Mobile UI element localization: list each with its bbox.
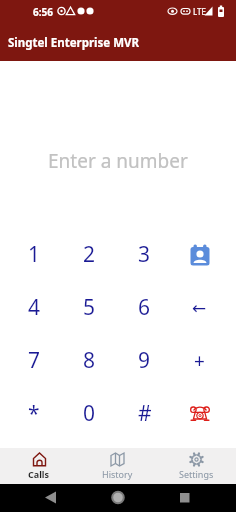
button[interactable]: Calls [0,448,78,484]
staticText: 6:56 [33,5,53,19]
staticText: Enter a number [48,148,188,174]
staticText: 8 [83,346,96,375]
button[interactable]: 2 [62,228,117,281]
staticText: History [102,468,133,480]
button[interactable]: 9 [117,334,172,387]
staticText: + [194,348,205,374]
staticText: LTE [193,6,206,17]
button[interactable]: 4 [6,281,62,334]
staticText: 4 [28,293,41,322]
button[interactable]: 7 [6,334,62,387]
button[interactable]: * [6,387,62,440]
button[interactable] [172,387,227,440]
staticText: 6 [138,293,151,322]
button[interactable]: + [172,334,227,387]
staticText: 7 [28,346,41,375]
staticText: 9 [138,346,151,375]
button[interactable]: ← [172,281,227,334]
button[interactable] [0,484,78,512]
staticText: * [28,399,40,428]
staticText: Calls [28,468,50,480]
button[interactable]: 1 [6,228,62,281]
staticText: # [138,399,152,428]
button[interactable] [172,228,227,281]
button[interactable]: History [78,448,157,484]
button[interactable]: # [117,387,172,440]
staticText: Singtel Enterprise MVR [8,35,140,51]
staticText: 0 [83,399,96,428]
button[interactable]: 8 [62,334,117,387]
staticText: 5 [83,293,96,322]
button[interactable]: 0 [62,387,117,440]
staticText: Settings [179,468,214,480]
staticText: 3 [138,240,151,269]
button[interactable]: 6 [117,281,172,334]
staticText: ← [192,298,207,318]
button[interactable]: 5 [62,281,117,334]
staticText: 2 [83,240,96,269]
button[interactable] [157,484,236,512]
staticText: 1 [28,240,41,269]
button[interactable] [78,484,157,512]
button[interactable]: 3 [117,228,172,281]
button[interactable]: Settings [157,448,236,484]
